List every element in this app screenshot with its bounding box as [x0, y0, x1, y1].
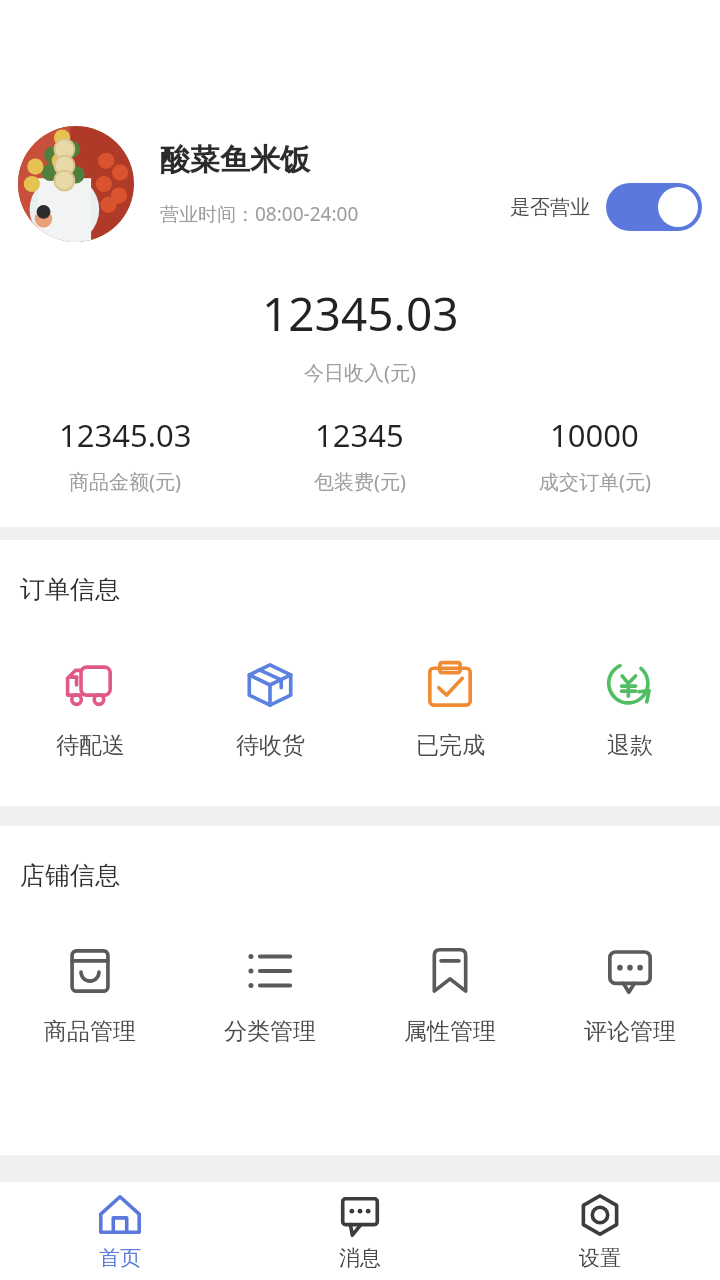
button[interactable]: 消息: [240, 1182, 480, 1280]
staticText: 10000: [550, 414, 639, 456]
button[interactable]: 分类管理: [180, 939, 360, 1050]
staticText: 是否营业: [510, 195, 590, 220]
staticText: 商品管理: [44, 1017, 136, 1046]
staticText: 评论管理: [584, 1017, 676, 1046]
button[interactable]: 10000: [477, 414, 712, 495]
button[interactable]: 首页: [0, 1182, 240, 1280]
staticText: 消息: [339, 1245, 381, 1271]
staticText: 12345: [315, 414, 404, 456]
staticText: 退款: [607, 731, 653, 760]
staticText: 店铺信息: [20, 860, 120, 891]
staticText: 今日收入(元): [304, 359, 416, 386]
button[interactable]: 已完成: [360, 653, 540, 764]
staticText: 商品金额(元): [69, 468, 181, 495]
button[interactable]: 12345: [242, 414, 477, 495]
staticText: 成交订单(元): [539, 468, 651, 495]
staticText: 12345.03: [59, 414, 192, 456]
button[interactable]: 12345.03: [8, 414, 242, 495]
button[interactable]: 待配送: [0, 653, 180, 764]
staticText: 待配送: [56, 731, 125, 760]
button[interactable]: 退款: [540, 653, 720, 764]
staticText: 设置: [579, 1245, 621, 1271]
staticText: 首页: [99, 1245, 141, 1271]
button[interactable]: 待收货: [180, 653, 360, 764]
staticText: 酸菜鱼米饭: [160, 141, 310, 179]
staticText: 已完成: [416, 731, 485, 760]
button[interactable]: 属性管理: [360, 939, 540, 1050]
button[interactable]: 商品管理: [0, 939, 180, 1050]
button[interactable]: 营业开关: [606, 183, 702, 231]
staticText: 营业时间：08:00-24:00: [160, 201, 359, 227]
button[interactable]: 设置: [480, 1182, 720, 1280]
staticText: 包装费(元): [314, 468, 406, 495]
button[interactable]: 评论管理: [540, 939, 720, 1050]
staticText: 分类管理: [224, 1017, 316, 1046]
staticText: 属性管理: [404, 1017, 496, 1046]
staticText: 12345.03: [262, 282, 459, 345]
staticText: 订单信息: [20, 574, 120, 605]
staticText: 待收货: [236, 731, 305, 760]
